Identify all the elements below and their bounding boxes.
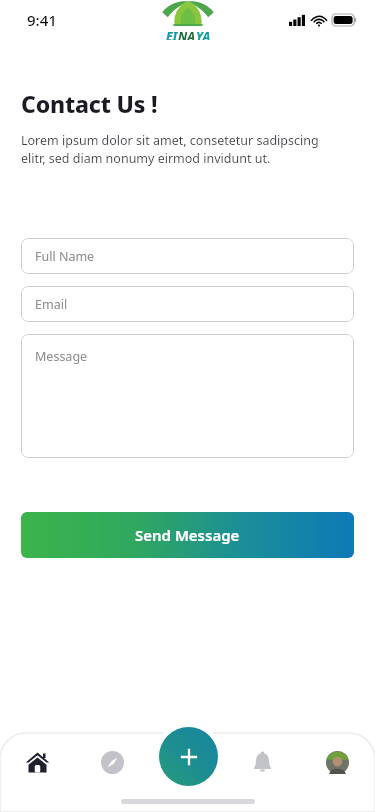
staticText: Send Message xyxy=(135,525,240,545)
staticText: EI xyxy=(166,28,178,40)
button[interactable]: Add xyxy=(159,727,218,786)
staticText: Message xyxy=(35,348,88,365)
button[interactable]: Home xyxy=(0,740,75,784)
button[interactable]: Send Message xyxy=(21,512,354,558)
button[interactable]: Email xyxy=(21,286,354,322)
button[interactable]: Message xyxy=(21,334,354,458)
staticText: Lorem ipsum dolor sit amet, consetetur s… xyxy=(21,132,319,167)
button[interactable]: Profile xyxy=(300,740,375,784)
staticText: Contact Us ! xyxy=(21,88,158,119)
button[interactable]: Notifications xyxy=(225,740,300,784)
staticText: 9:41 xyxy=(27,10,57,30)
staticText: YA xyxy=(196,28,211,40)
button[interactable]: Full Name xyxy=(21,238,354,274)
button[interactable]: Explore xyxy=(75,740,150,784)
staticText: Email xyxy=(35,296,68,313)
staticText: Full Name xyxy=(35,248,95,265)
staticText: NA xyxy=(178,28,196,40)
